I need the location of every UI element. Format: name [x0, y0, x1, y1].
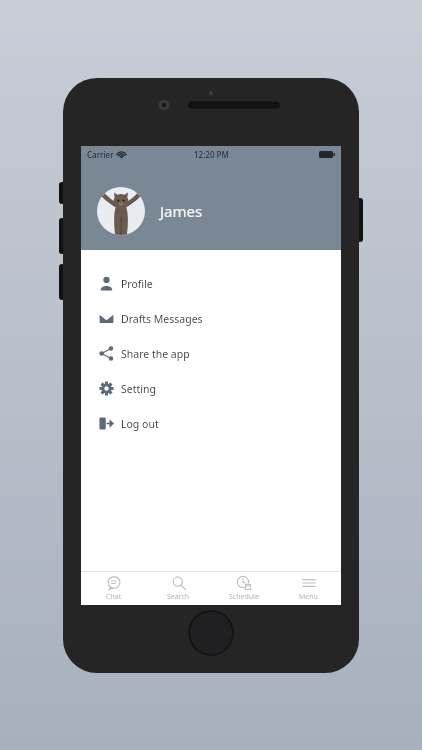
staticText: Chat — [106, 592, 122, 602]
staticText: Share the app — [121, 347, 190, 361]
button[interactable]: Menu — [276, 572, 341, 605]
staticText: James — [160, 201, 203, 221]
button[interactable]: Profile — [81, 266, 341, 301]
button[interactable]: Setting — [81, 371, 341, 406]
staticText: Search — [167, 592, 190, 602]
button[interactable]: Search — [146, 572, 211, 605]
staticText: Drafts Messages — [121, 312, 203, 326]
button[interactable]: Chat — [81, 572, 146, 605]
button[interactable]: Schedule — [211, 572, 276, 605]
staticText: Carrier — [87, 149, 114, 160]
staticText: Log out — [121, 417, 159, 431]
button[interactable]: James — [81, 172, 341, 250]
button[interactable]: Share the app — [81, 336, 341, 371]
button[interactable]: Log out — [81, 406, 341, 441]
staticText: Profile — [121, 277, 153, 291]
staticText: Schedule — [229, 592, 259, 602]
button[interactable]: Drafts Messages — [81, 301, 341, 336]
staticText: Setting — [121, 382, 156, 396]
staticText: 12:20 PM — [194, 149, 229, 160]
staticText: Menu — [299, 592, 318, 602]
